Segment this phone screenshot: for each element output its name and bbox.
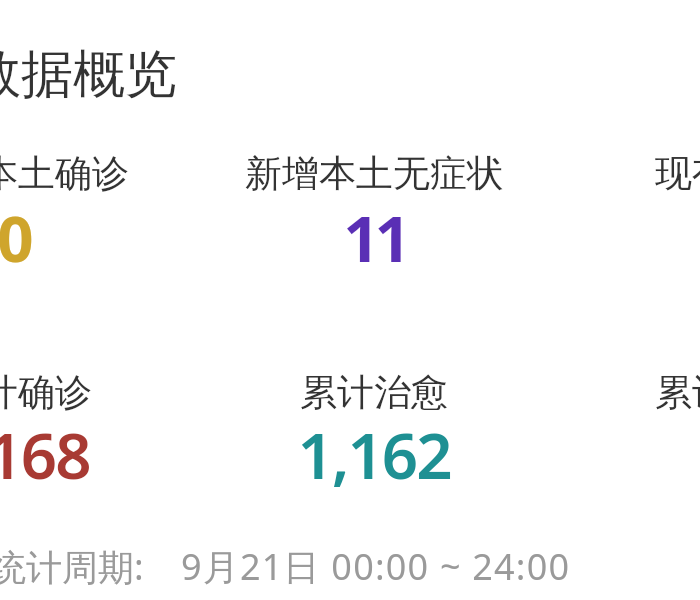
staticText: 数据概览	[0, 42, 177, 108]
staticText: 0	[0, 194, 32, 280]
staticText: 现有确诊	[655, 150, 700, 197]
button[interactable]: 现有确诊	[0, 0, 500, 86]
staticText: 统计周期:	[0, 542, 144, 591]
staticText: 1,168	[0, 411, 90, 497]
button[interactable]: 累计确诊	[0, 0, 500, 86]
staticText: 累计治愈	[300, 369, 448, 416]
staticText: 累计死亡	[655, 369, 700, 416]
button[interactable]: 累计死亡	[0, 0, 500, 86]
staticText: 9月21日 00:00 ~ 24:00	[181, 542, 571, 591]
staticText: 累计确诊	[0, 369, 92, 416]
button[interactable]: 新增本土确诊	[0, 0, 500, 86]
staticText: 新增本土确诊	[0, 150, 129, 197]
button[interactable]: 累计治愈	[0, 0, 500, 86]
staticText: 1,162	[297, 411, 451, 497]
staticText: 新增本土无症状	[245, 150, 504, 197]
button[interactable]: 新增本土无症状	[0, 0, 500, 86]
staticText: 11	[343, 194, 406, 280]
